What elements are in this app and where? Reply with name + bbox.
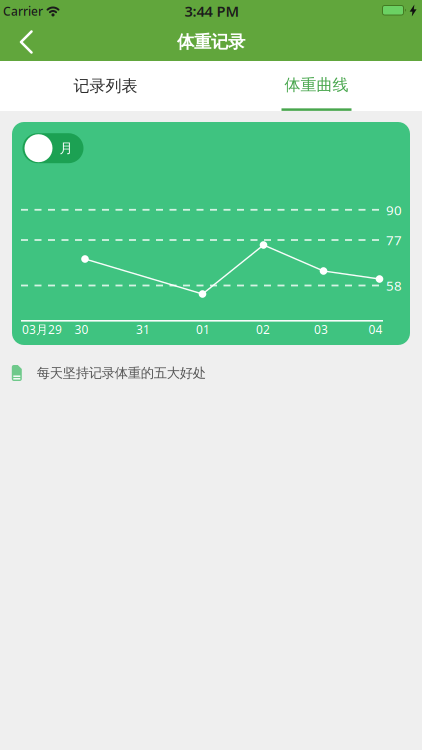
staticText: Carrier [3,3,43,19]
staticText: 02 [256,321,270,337]
staticText: 90 [386,201,402,219]
staticText: 03月29 [22,321,62,337]
staticText: 3:44 PM [184,1,239,21]
staticText: 31 [136,321,150,337]
button[interactable]: 按月显示 [22,133,83,163]
staticText: 体重记录 [177,31,245,53]
staticText: 03 [314,321,328,337]
staticText: 每天坚持记录体重的五大好处 [37,365,206,381]
staticText: 01 [196,321,210,337]
button[interactable]: Back [4,20,48,64]
staticText: 04 [368,321,382,337]
staticText: 体重曲线 [284,75,348,95]
staticText: 30 [74,321,88,337]
button[interactable]: 体重曲线 [211,61,422,111]
staticText: 月 [59,140,72,156]
button[interactable]: 每天坚持记录体重的五大好处 [8,360,224,386]
staticText: 58 [386,277,402,294]
button[interactable]: 记录列表 [0,61,211,111]
staticText: 77 [386,231,402,249]
staticText: 记录列表 [73,76,137,96]
